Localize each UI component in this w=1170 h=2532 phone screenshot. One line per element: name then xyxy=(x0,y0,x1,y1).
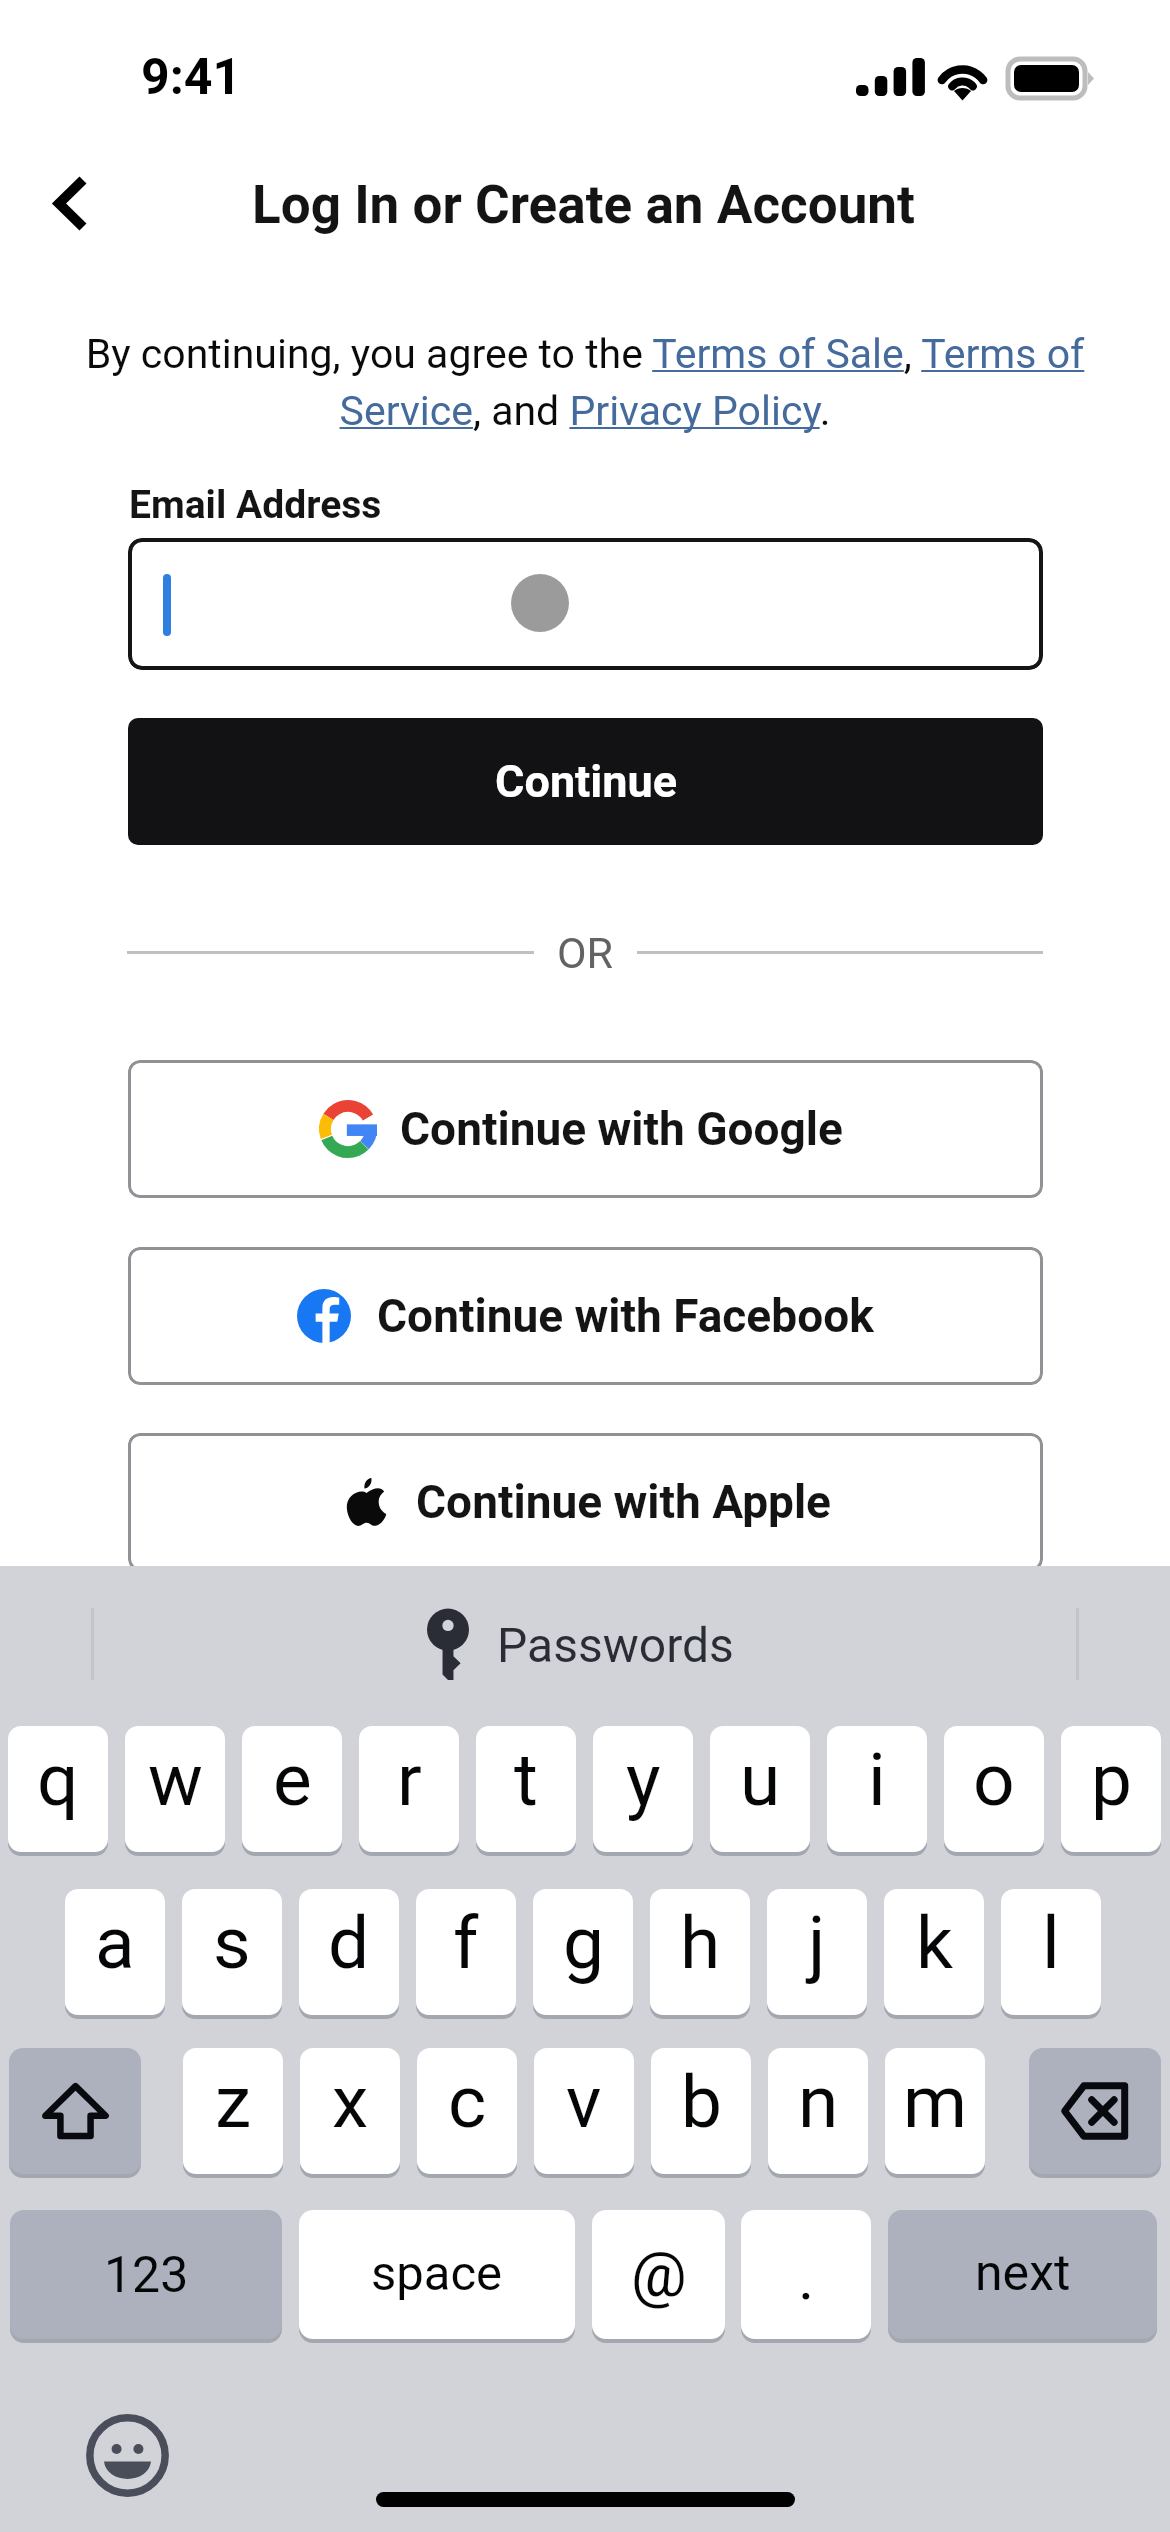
button[interactable]: p xyxy=(1061,1726,1161,1852)
staticText: i xyxy=(868,1737,886,1823)
button[interactable]: h xyxy=(650,1889,750,2015)
staticText: . xyxy=(798,2241,815,2314)
button[interactable] xyxy=(128,538,1043,670)
staticText: Continue xyxy=(495,755,677,808)
button[interactable]: . xyxy=(741,2210,871,2339)
button[interactable]: y xyxy=(593,1726,693,1852)
staticText: s xyxy=(213,1900,251,1986)
button[interactable]: u xyxy=(710,1726,810,1852)
staticText: Passwords xyxy=(497,1617,734,1673)
button[interactable]: Shift xyxy=(9,2048,141,2174)
button[interactable]: l xyxy=(1001,1889,1101,2015)
staticText: a xyxy=(95,1900,135,1986)
button[interactable]: 123 xyxy=(10,2210,282,2339)
staticText: Continue with Google xyxy=(400,1102,843,1156)
staticText: space xyxy=(371,2245,503,2302)
button[interactable]: j xyxy=(767,1889,867,2015)
button[interactable]: n xyxy=(768,2048,868,2174)
button[interactable]: i xyxy=(827,1726,927,1852)
button[interactable]: c xyxy=(417,2048,517,2174)
button[interactable]: Continue with Google xyxy=(128,1060,1043,1198)
staticText: By continuing, you agree to the Terms of… xyxy=(85,330,1085,378)
staticText: x xyxy=(332,2059,369,2145)
button[interactable]: Back xyxy=(16,148,126,258)
staticText: b xyxy=(681,2059,722,2145)
button[interactable]: Continue with Apple xyxy=(128,1433,1043,1571)
button[interactable]: z xyxy=(183,2048,283,2174)
button[interactable]: x xyxy=(300,2048,400,2174)
button[interactable]: Continue xyxy=(128,718,1043,845)
button[interactable]: Emoji keyboard xyxy=(87,2415,168,2496)
staticText: n xyxy=(798,2059,839,2145)
button[interactable]: Backspace xyxy=(1029,2048,1161,2174)
button[interactable]: v xyxy=(534,2048,634,2174)
button[interactable]: t xyxy=(476,1726,576,1852)
button[interactable]: g xyxy=(533,1889,633,2015)
button[interactable]: @ xyxy=(592,2210,725,2339)
staticText: 123 xyxy=(104,2246,189,2305)
staticText: 9:41 xyxy=(141,48,242,107)
button[interactable]: Continue with Facebook xyxy=(128,1247,1043,1385)
staticText: k xyxy=(916,1900,953,1986)
staticText: q xyxy=(37,1737,79,1823)
button[interactable]: k xyxy=(884,1889,984,2015)
button[interactable]: o xyxy=(944,1726,1044,1852)
button[interactable]: space xyxy=(299,2210,575,2339)
staticText: Continue with Facebook xyxy=(377,1289,874,1343)
button[interactable]: q xyxy=(8,1726,108,1852)
button[interactable]: Passwords xyxy=(427,1606,734,1684)
staticText: l xyxy=(1042,1900,1060,1986)
button[interactable]: e xyxy=(242,1726,342,1852)
staticText: Email Address xyxy=(129,482,382,528)
button[interactable]: d xyxy=(299,1889,399,2015)
button[interactable]: a xyxy=(65,1889,165,2015)
staticText: z xyxy=(215,2059,252,2145)
staticText: OR xyxy=(557,928,614,978)
staticText: Log In or Create an Account xyxy=(252,174,915,236)
staticText: v xyxy=(566,2059,602,2145)
staticText: m xyxy=(903,2059,968,2145)
button[interactable]: m xyxy=(885,2048,985,2174)
staticText: t xyxy=(514,1737,538,1823)
staticText: next xyxy=(975,2244,1071,2303)
staticText: f xyxy=(453,1900,479,1986)
staticText: w xyxy=(148,1737,203,1823)
staticText: Continue with Apple xyxy=(416,1475,831,1529)
staticText: y xyxy=(626,1737,661,1823)
button[interactable]: s xyxy=(182,1889,282,2015)
button[interactable]: b xyxy=(651,2048,751,2174)
staticText: o xyxy=(973,1737,1015,1823)
staticText: j xyxy=(808,1900,826,1986)
button[interactable]: f xyxy=(416,1889,516,2015)
staticText: r xyxy=(397,1737,422,1823)
staticText: c xyxy=(448,2059,487,2145)
button[interactable]: w xyxy=(125,1726,225,1852)
staticText: e xyxy=(273,1737,312,1823)
staticText: Service, and Privacy Policy. xyxy=(85,387,1085,435)
staticText: u xyxy=(740,1737,781,1823)
staticText: h xyxy=(680,1900,721,1986)
staticText: g xyxy=(563,1900,604,1986)
button[interactable]: r xyxy=(359,1726,459,1852)
button[interactable]: next xyxy=(888,2210,1157,2339)
staticText: d xyxy=(328,1900,370,1986)
staticText: p xyxy=(1091,1737,1132,1823)
staticText: @ xyxy=(631,2238,687,2311)
